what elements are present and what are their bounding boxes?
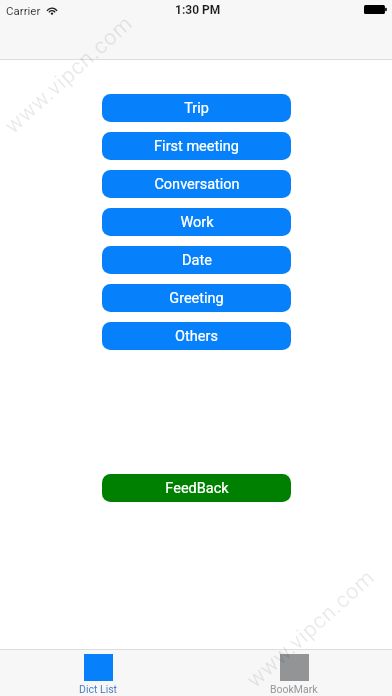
button[interactable]: Work [102,208,291,236]
other: Battery full [364,5,387,14]
staticText: Greeting [169,290,224,307]
staticText: Others [175,328,218,345]
staticText: Dict List [79,683,118,695]
button[interactable]: FeedBack [102,474,291,502]
staticText: Work [180,214,214,231]
staticText: Trip [184,100,209,117]
button[interactable]: Conversation [102,170,291,198]
staticText: FeedBack [165,480,229,497]
button[interactable]: Dict List [0,650,196,696]
button[interactable]: BookMark [196,650,392,696]
button[interactable]: Others [102,322,291,350]
staticText: www.vipcn.com [0,10,139,139]
staticText: Date [182,252,212,269]
button[interactable]: Trip [102,94,291,122]
staticText: www.vipcn.com [242,564,381,693]
button[interactable]: First meeting [102,132,291,160]
staticText: BookMark [270,683,318,695]
other: Wi-Fi signal [46,5,58,15]
staticText: Conversation [154,176,240,193]
staticText: First meeting [154,138,239,155]
staticText: Carrier [6,4,41,17]
button[interactable]: Greeting [102,284,291,312]
staticText: 1:30 PM [175,3,221,17]
button[interactable]: Date [102,246,291,274]
